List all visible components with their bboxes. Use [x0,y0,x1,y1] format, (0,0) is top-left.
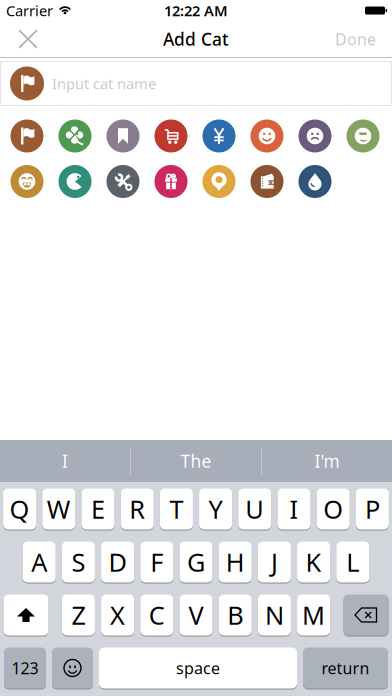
button[interactable] [106,165,139,198]
staticText: I [62,449,68,472]
staticText: space [176,657,220,679]
button[interactable] [18,29,38,49]
button[interactable]: J [258,541,291,583]
staticText: L [346,545,359,579]
staticText: K [306,545,322,579]
button[interactable]: E [81,488,114,530]
button[interactable]: The [131,449,261,472]
button[interactable] [250,119,283,152]
button[interactable]: 123 [4,647,46,689]
button[interactable]: I [277,488,310,530]
button[interactable]: S [62,541,95,583]
button[interactable] [343,594,388,636]
staticText: D [109,545,127,579]
staticText: Add Cat [163,27,229,50]
button[interactable]: I'm [262,449,392,472]
button[interactable]: H [219,541,252,583]
staticText: C [149,598,165,632]
button[interactable]: T [160,488,193,530]
button[interactable]: O [317,488,350,530]
button[interactable]: W [42,488,75,530]
button[interactable]: space [99,647,297,689]
button[interactable]: I [0,449,130,472]
button[interactable]: P [356,488,389,530]
button[interactable] [202,165,235,198]
button[interactable] [106,119,139,152]
button[interactable] [58,165,91,198]
button[interactable]: Y [199,488,232,530]
staticText: R [129,492,145,526]
staticText: F [150,545,163,579]
staticText: return [321,657,369,679]
staticText: Y [209,492,223,526]
button[interactable]: B [219,594,252,636]
button[interactable] [154,165,187,198]
button[interactable] [3,594,48,636]
button[interactable]: M [297,594,330,636]
staticText: T [169,492,183,526]
button[interactable]: Done [335,28,376,50]
staticText: V [188,598,203,632]
staticText: Z [71,598,85,632]
staticText: Input cat name [52,74,156,93]
staticText: E [91,492,105,526]
staticText: B [227,598,243,632]
staticText: U [245,492,264,526]
staticText: I [289,492,298,526]
button[interactable] [10,165,43,198]
button[interactable] [10,119,43,152]
staticText: I'm [314,449,339,472]
button[interactable]: G [179,541,212,583]
button[interactable]: Input cat name [0,61,392,106]
button[interactable]: K [297,541,330,583]
staticText: A [31,545,47,579]
button[interactable]: L [336,541,369,583]
button[interactable]: A [23,541,56,583]
button[interactable] [58,119,91,152]
button[interactable] [250,165,283,198]
staticText: X [110,598,125,632]
button[interactable]: Z [62,594,95,636]
staticText: G [187,545,205,579]
staticText: J [271,545,278,579]
staticText: M [302,598,325,632]
staticText: O [323,492,343,526]
button[interactable] [346,119,379,152]
staticText: Done [335,28,376,50]
staticText: The [180,449,211,472]
button[interactable]: U [238,488,271,530]
button[interactable] [202,119,235,152]
button[interactable] [298,165,331,198]
button[interactable]: N [258,594,291,636]
staticText: W [47,492,71,526]
button[interactable]: C [140,594,173,636]
button[interactable] [298,119,331,152]
staticText: 123 [11,657,38,679]
staticText: P [365,492,380,526]
button[interactable] [52,647,93,689]
staticText: N [265,598,284,632]
button[interactable]: X [101,594,134,636]
staticText: Carrier [6,1,53,20]
button[interactable]: F [140,541,173,583]
button[interactable]: R [121,488,154,530]
button[interactable]: Q [3,488,36,530]
button[interactable]: D [101,541,134,583]
staticText: H [226,545,245,579]
button[interactable] [154,119,187,152]
button[interactable]: V [179,594,212,636]
staticText: S [71,545,85,579]
staticText: Q [10,492,30,526]
staticText: 12:22 AM [164,1,228,20]
button[interactable]: return [303,647,388,689]
